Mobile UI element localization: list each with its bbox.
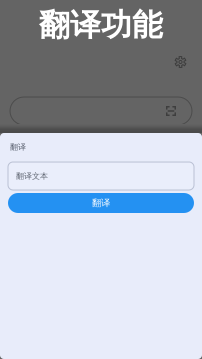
staticText: 翻译 xyxy=(10,142,26,152)
button[interactable] xyxy=(10,97,192,125)
staticText: 翻译功能 xyxy=(39,6,163,44)
staticText: 翻译 xyxy=(92,197,110,209)
button[interactable]: Settings xyxy=(170,52,190,72)
staticText: 翻译文本 xyxy=(16,171,48,181)
button[interactable]: 翻译 xyxy=(8,193,194,213)
